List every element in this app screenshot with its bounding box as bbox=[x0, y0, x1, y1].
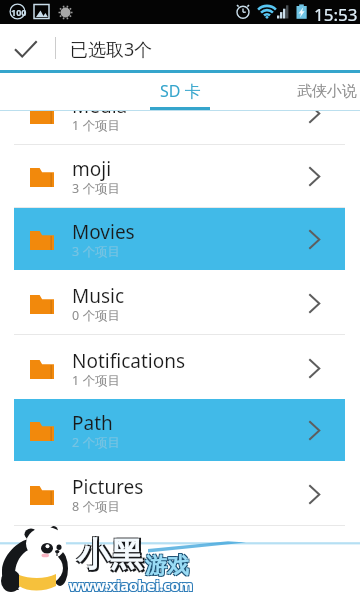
staticText: www.xiaohei.com bbox=[70, 577, 194, 592]
staticText: Movies bbox=[72, 219, 135, 245]
button[interactable]: Movies bbox=[0, 207, 360, 271]
staticText: 1 个项目 bbox=[72, 372, 120, 389]
button[interactable]: Confirm selection bbox=[2, 27, 54, 71]
staticText: 0 个项目 bbox=[72, 307, 120, 324]
button[interactable]: moji bbox=[0, 144, 360, 208]
staticText: 游戏 bbox=[146, 553, 190, 581]
staticText: Pictures bbox=[72, 474, 144, 500]
staticText: 游戏 bbox=[144, 551, 188, 579]
staticText: 3 个项目 bbox=[72, 180, 120, 197]
staticText: www.xiaohei.com bbox=[68, 577, 192, 592]
staticText: www.xiaohei.com bbox=[68, 575, 192, 592]
staticText: 小黑 bbox=[77, 534, 143, 576]
staticText: 小黑 bbox=[76, 533, 142, 575]
button[interactable]: Notifications bbox=[0, 336, 360, 400]
staticText: 武侠小说 bbox=[297, 82, 357, 101]
staticText: 1 个项目 bbox=[72, 117, 120, 134]
staticText: 游戏 bbox=[144, 553, 188, 581]
staticText: Notifications bbox=[72, 348, 186, 374]
button[interactable]: Pictures bbox=[0, 462, 360, 526]
staticText: 小黑 bbox=[79, 533, 145, 575]
staticText: 游戏 bbox=[146, 551, 190, 579]
staticText: 100 bbox=[11, 6, 27, 18]
button[interactable]: Media bbox=[0, 111, 360, 145]
staticText: 3 个项目 bbox=[72, 243, 120, 260]
staticText: 已选取3个 bbox=[70, 37, 153, 62]
staticText: 小黑 bbox=[76, 536, 142, 578]
staticText: SD 卡 bbox=[160, 80, 201, 102]
staticText: 小黑 bbox=[79, 536, 145, 578]
staticText: Path bbox=[72, 410, 113, 436]
staticText: Music bbox=[72, 283, 125, 309]
staticText: 游戏 bbox=[145, 552, 189, 580]
staticText: Media bbox=[72, 111, 128, 119]
button[interactable]: SD 卡 bbox=[150, 73, 210, 110]
staticText: 15:53 bbox=[314, 3, 358, 26]
staticText: 2 个项目 bbox=[72, 434, 120, 451]
staticText: moji bbox=[72, 156, 112, 182]
button[interactable]: Path bbox=[0, 398, 360, 462]
staticText: www.xiaohei.com bbox=[70, 575, 194, 592]
button[interactable]: 武侠小说 bbox=[286, 73, 360, 110]
staticText: www.xiaohei.com bbox=[69, 576, 193, 592]
button[interactable]: Music bbox=[0, 271, 360, 335]
staticText: 8 个项目 bbox=[72, 498, 120, 515]
